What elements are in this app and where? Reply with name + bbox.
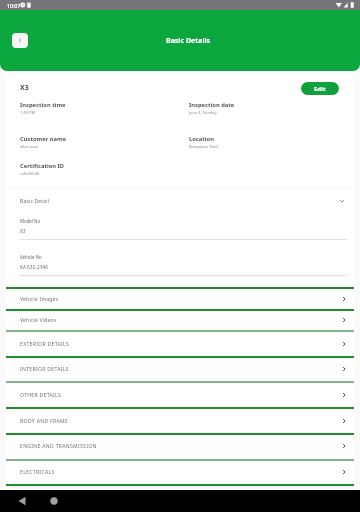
staticText: Vehicle Images xyxy=(20,296,59,303)
staticText: cvfb45040 xyxy=(20,171,40,176)
staticText: Inspection time xyxy=(20,101,66,109)
button[interactable]: Vehicle Images xyxy=(6,289,354,309)
button[interactable]: Edit xyxy=(301,82,339,95)
staticText: Bangalore Yard xyxy=(189,144,218,149)
button[interactable]: Vehicle Videos xyxy=(6,310,354,330)
staticText: ENGINE AND TRANSMISSION xyxy=(20,443,97,450)
staticText: Model No xyxy=(20,218,41,224)
staticText: Certification ID xyxy=(20,162,65,170)
staticText: EXTERIOR DETAILS xyxy=(20,341,70,348)
staticText: Vehicle No xyxy=(20,254,42,260)
staticText: Customer name xyxy=(20,135,67,143)
staticText: Inspection date xyxy=(189,101,235,109)
button[interactable]: Basic Detail xyxy=(6,189,354,213)
staticText: X3 xyxy=(20,228,26,234)
staticText: June 4, Sunday xyxy=(189,110,217,115)
staticText: 10:07 xyxy=(7,2,21,9)
staticText: BODY AND FRAME xyxy=(20,418,69,425)
staticText: KA 63G 2346 xyxy=(20,264,48,270)
button[interactable]: Back xyxy=(12,33,28,48)
staticText: Basic Details xyxy=(166,36,211,46)
button[interactable]: EXTERIOR DETAILS xyxy=(6,332,354,356)
staticText: allan paul xyxy=(20,144,39,149)
staticText: ELECTRICALS xyxy=(20,469,55,476)
button[interactable]: INTERIOR DETAILS xyxy=(6,357,354,381)
button[interactable]: ELECTRICALS xyxy=(6,460,354,484)
staticText: INTERIOR DETAILS xyxy=(20,366,69,373)
button[interactable]: OTHER DETAILS xyxy=(6,383,354,407)
button[interactable]: ENGINE AND TRANSMISSION xyxy=(6,434,354,458)
staticText: Location xyxy=(189,135,214,143)
staticText: OTHER DETAILS xyxy=(20,392,62,399)
staticText: Edit xyxy=(314,85,326,93)
staticText: Basic Detail xyxy=(20,198,50,205)
button[interactable]: BODY AND FRAME xyxy=(6,409,354,433)
staticText: 1:48 PM xyxy=(20,110,36,115)
staticText: Vehicle Videos xyxy=(20,317,57,324)
staticText: X3 xyxy=(20,83,29,93)
